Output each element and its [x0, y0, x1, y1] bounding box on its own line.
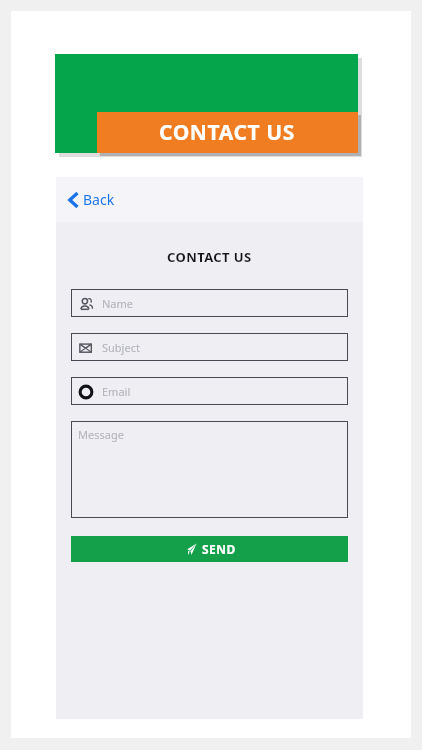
button[interactable]: CONTACT US [97, 112, 358, 153]
staticText: CONTACT US [159, 118, 296, 147]
staticText: Name [102, 296, 134, 311]
button[interactable]: SEND [71, 536, 348, 562]
staticText: Message [78, 427, 124, 442]
staticText: CONTACT US [167, 248, 252, 266]
staticText: Email [102, 384, 131, 399]
button[interactable]: CONTACT US [55, 54, 358, 153]
button[interactable]: Subject [71, 333, 348, 361]
button[interactable]: Back [64, 186, 119, 213]
button[interactable]: Message [71, 421, 348, 518]
button[interactable]: Email [71, 377, 348, 405]
button[interactable]: Name [71, 289, 348, 317]
staticText: Back [83, 190, 115, 209]
staticText: Subject [102, 340, 140, 355]
staticText: SEND [202, 541, 236, 557]
